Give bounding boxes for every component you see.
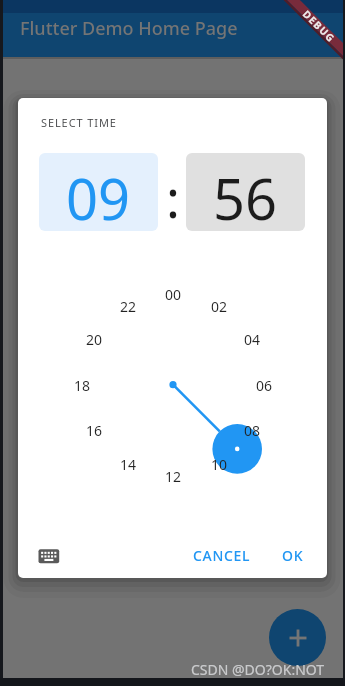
button[interactable]	[269, 609, 326, 666]
staticText: 02	[211, 297, 228, 316]
staticText: CSDN @DO?OK:NOT	[191, 660, 325, 679]
button[interactable]: OK	[268, 539, 317, 572]
staticText: 00	[165, 285, 182, 304]
staticText: 04	[244, 330, 261, 349]
staticText: DEBUG	[300, 7, 339, 46]
staticText: 16	[86, 421, 103, 440]
staticText: 20	[86, 330, 103, 349]
staticText: 08	[244, 421, 261, 440]
button[interactable]: 56	[186, 153, 305, 231]
staticText: OK	[282, 546, 304, 565]
staticText: SELECT TIME	[41, 115, 117, 130]
staticText: 22	[120, 297, 137, 316]
staticText: 18	[74, 376, 91, 395]
staticText: 06	[256, 376, 273, 395]
button[interactable]	[30, 541, 68, 572]
staticText: 14	[120, 455, 137, 474]
staticText: Flutter Demo Home Page	[20, 16, 238, 41]
staticText: 12	[165, 467, 182, 486]
staticText: 09	[66, 160, 131, 231]
staticText: :	[166, 162, 180, 233]
staticText: 56	[213, 160, 278, 231]
button[interactable]: 09	[39, 153, 158, 231]
button[interactable]: CANCEL	[188, 539, 256, 572]
staticText: CANCEL	[193, 546, 251, 565]
staticText: 10	[211, 455, 228, 474]
